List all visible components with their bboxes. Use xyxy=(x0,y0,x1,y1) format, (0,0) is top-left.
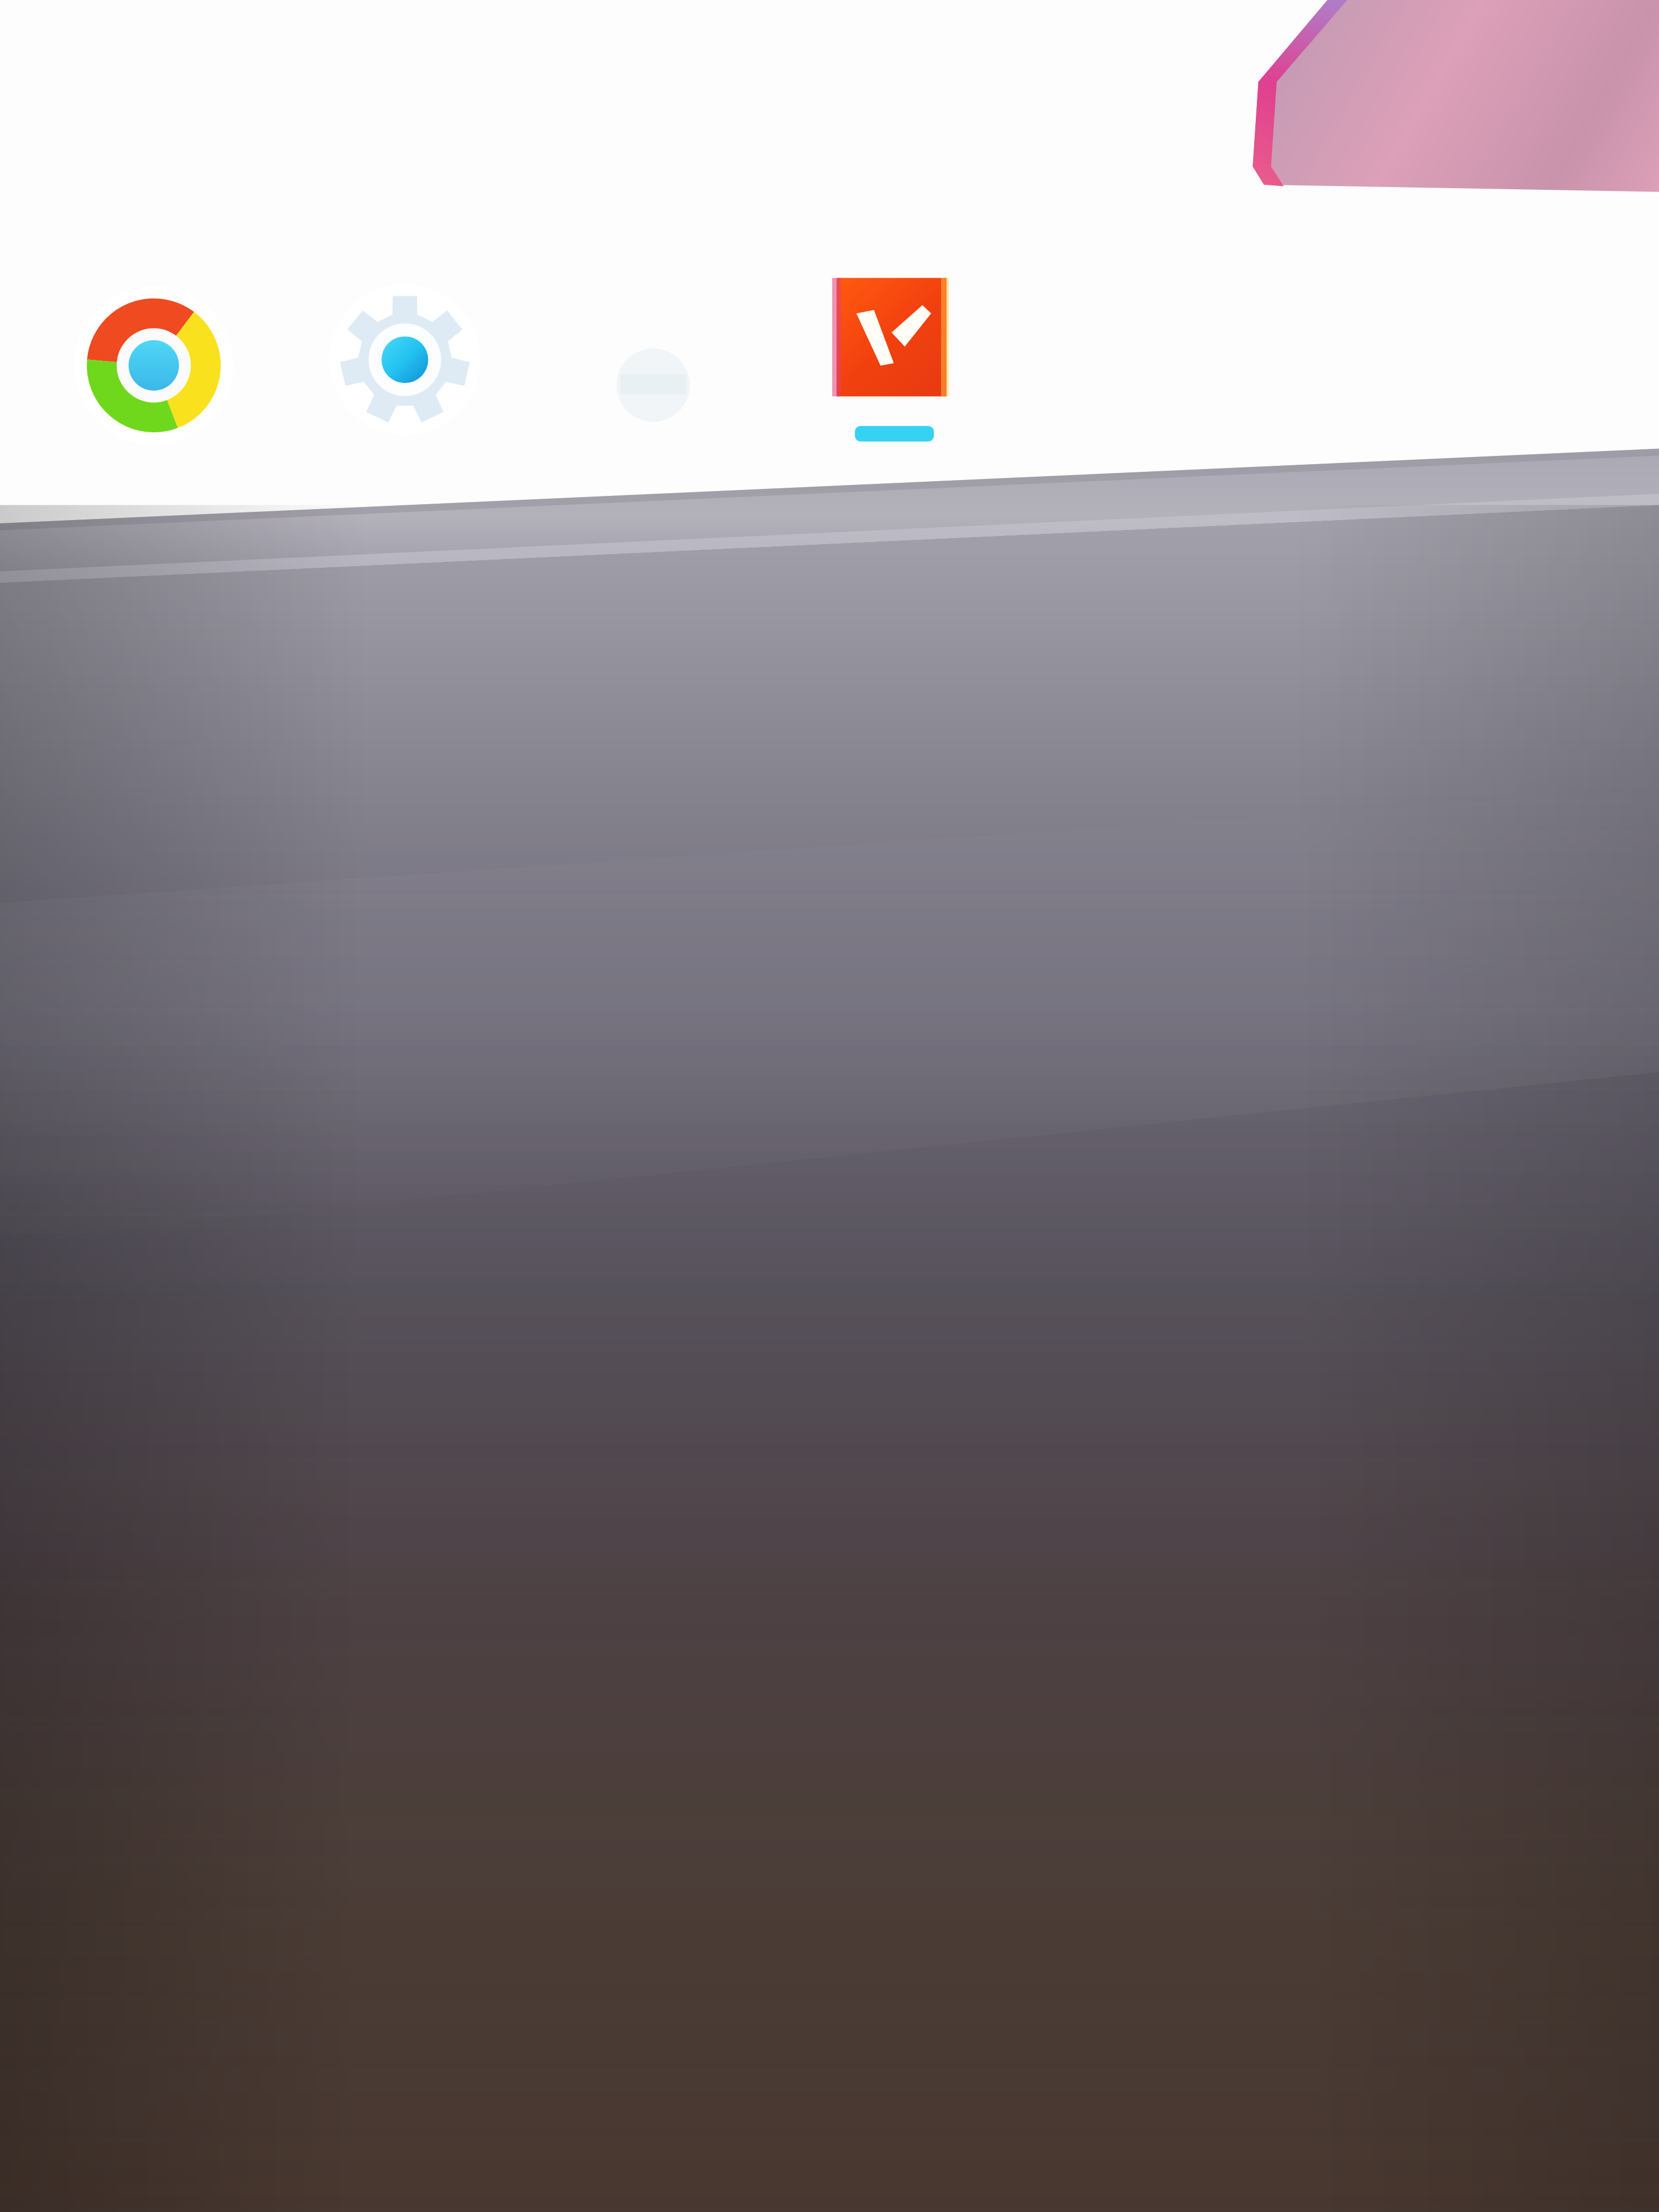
button[interactable]: Valorant xyxy=(826,269,946,433)
button[interactable]: Google Chrome xyxy=(77,297,209,430)
button[interactable]: Settings xyxy=(341,295,471,424)
button[interactable]: Taskbar app xyxy=(618,348,691,421)
